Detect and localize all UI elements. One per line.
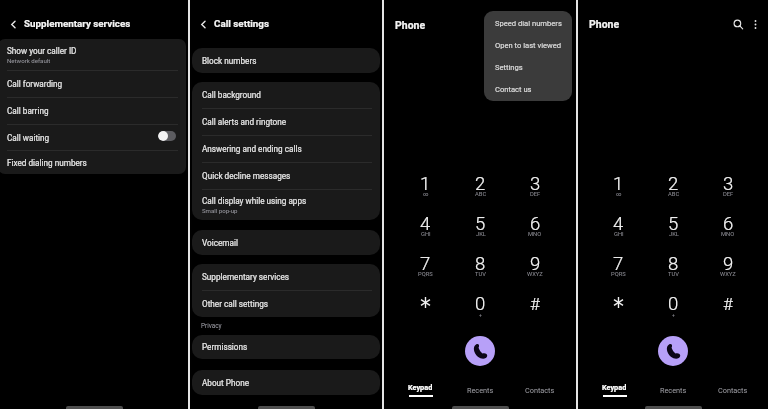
- button[interactable]: 6: [701, 209, 755, 245]
- staticText: 7: [613, 253, 624, 275]
- button[interactable]: Keypad: [584, 381, 644, 399]
- staticText: Quick decline messages: [202, 171, 291, 181]
- button[interactable]: 3: [508, 169, 562, 205]
- staticText: MNO: [528, 231, 542, 238]
- button[interactable]: Supplementary services: [192, 264, 380, 290]
- staticText: GHI: [421, 231, 431, 238]
- button[interactable]: Search: [730, 16, 746, 32]
- button[interactable]: Call barring: [0, 98, 186, 124]
- button[interactable]: #: [701, 289, 755, 325]
- button[interactable]: 1: [398, 169, 453, 205]
- staticText: #: [530, 294, 540, 314]
- staticText: Network default: [7, 57, 51, 64]
- button[interactable]: Contacts: [703, 381, 762, 399]
- button[interactable]: 1: [591, 169, 646, 205]
- button[interactable]: Open to last viewed: [484, 34, 572, 56]
- button[interactable]: 7: [591, 249, 646, 285]
- button[interactable]: About Phone: [192, 370, 380, 395]
- staticText: 1: [613, 173, 624, 195]
- button[interactable]: Call alerts and ringtone: [192, 109, 380, 135]
- staticText: ABC: [475, 191, 487, 198]
- staticText: GHI: [614, 231, 624, 238]
- button[interactable]: Call forwarding: [0, 71, 186, 97]
- staticText: ∞: [423, 191, 429, 198]
- button[interactable]: 4: [398, 209, 453, 245]
- button[interactable]: Quick decline messages: [192, 163, 380, 189]
- staticText: Call barring: [7, 106, 49, 116]
- button[interactable]: Back: [5, 16, 21, 32]
- button[interactable]: Other call settings: [192, 291, 380, 317]
- button[interactable]: Recents: [644, 381, 703, 399]
- staticText: 5: [475, 213, 486, 235]
- staticText: MNO: [721, 231, 735, 238]
- button[interactable]: Call waiting: [0, 125, 186, 150]
- button[interactable]: Speed dial numbers: [484, 12, 572, 34]
- staticText: 7: [420, 253, 431, 275]
- button[interactable]: 8: [453, 249, 508, 285]
- button[interactable]: [591, 289, 646, 325]
- button[interactable]: 2: [453, 169, 508, 205]
- button[interactable]: Call background: [192, 82, 380, 108]
- staticText: DEF: [723, 191, 734, 198]
- staticText: Permissions: [202, 342, 248, 352]
- button[interactable]: Block numbers: [192, 48, 380, 73]
- button[interactable]: 2: [646, 169, 701, 205]
- button[interactable]: Voicemail: [192, 230, 380, 255]
- button[interactable]: 7: [398, 249, 453, 285]
- staticText: ∞: [616, 191, 622, 198]
- staticText: 0: [475, 293, 486, 315]
- button[interactable]: Back: [195, 16, 211, 32]
- staticText: Call alerts and ringtone: [202, 117, 287, 127]
- button[interactable]: 0: [646, 289, 701, 325]
- button[interactable]: Recents: [450, 381, 510, 399]
- staticText: 8: [668, 253, 679, 275]
- staticText: JKL: [476, 231, 486, 238]
- staticText: Small pop-up: [202, 207, 238, 214]
- button[interactable]: 3: [701, 169, 755, 205]
- button[interactable]: 9: [508, 249, 562, 285]
- staticText: +: [479, 312, 482, 318]
- staticText: Keypad: [602, 383, 627, 392]
- button[interactable]: Call: [658, 336, 688, 366]
- staticText: Supplementary services: [24, 18, 131, 29]
- staticText: Call display while using apps: [202, 196, 307, 206]
- button[interactable]: Call: [465, 336, 495, 366]
- staticText: Contacts: [525, 386, 555, 395]
- button[interactable]: 0: [453, 289, 508, 325]
- button[interactable]: 8: [646, 249, 701, 285]
- button[interactable]: #: [508, 289, 562, 325]
- button[interactable]: Show your caller ID: [0, 39, 186, 70]
- button[interactable]: 6: [508, 209, 562, 245]
- button[interactable]: Call display while using apps: [192, 190, 380, 220]
- button[interactable]: 5: [453, 209, 508, 245]
- staticText: About Phone: [202, 378, 250, 388]
- staticText: Answering and ending calls: [202, 144, 302, 154]
- staticText: JKL: [669, 231, 679, 238]
- staticText: WXYZ: [720, 271, 736, 278]
- staticText: Keypad: [408, 383, 433, 392]
- staticText: Voicemail: [202, 238, 238, 248]
- button[interactable]: [398, 289, 453, 325]
- staticText: Fixed dialing numbers: [7, 158, 87, 168]
- staticText: Recents: [467, 386, 494, 395]
- staticText: 3: [530, 173, 541, 195]
- button[interactable]: 4: [591, 209, 646, 245]
- button[interactable]: Permissions: [192, 335, 380, 359]
- staticText: DEF: [530, 191, 541, 198]
- button[interactable]: Settings: [484, 56, 572, 78]
- button[interactable]: Contact us: [484, 78, 572, 100]
- staticText: 6: [530, 213, 541, 235]
- staticText: Other call settings: [202, 299, 268, 309]
- button[interactable]: More options: [747, 16, 763, 32]
- staticText: PQRS: [611, 271, 626, 278]
- button[interactable]: 9: [701, 249, 755, 285]
- staticText: Call forwarding: [7, 79, 63, 89]
- staticText: Recents: [660, 386, 687, 395]
- button[interactable]: Keypad: [390, 381, 450, 399]
- staticText: Privacy: [201, 322, 222, 330]
- button[interactable]: Answering and ending calls: [192, 136, 380, 162]
- button[interactable]: 5: [646, 209, 701, 245]
- button[interactable]: Fixed dialing numbers: [0, 151, 186, 174]
- button[interactable]: Contacts: [510, 381, 570, 399]
- staticText: 2: [668, 173, 679, 195]
